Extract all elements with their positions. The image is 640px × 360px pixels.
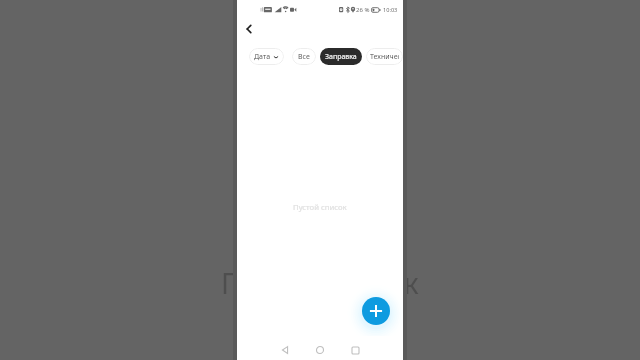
staticText: Дата bbox=[254, 52, 271, 62]
button[interactable]: Recents bbox=[344, 339, 366, 360]
button[interactable]: Заправка bbox=[320, 48, 362, 65]
button[interactable]: Back bbox=[274, 339, 296, 360]
staticText: Пустой список bbox=[221, 264, 419, 303]
button[interactable]: Add entry bbox=[362, 297, 390, 325]
button[interactable]: Back bbox=[239, 19, 259, 39]
staticText: 10:03 bbox=[383, 6, 398, 14]
button[interactable]: Все bbox=[292, 48, 316, 65]
staticText: Техническое обслуживание bbox=[370, 52, 399, 62]
staticText: Все bbox=[298, 52, 310, 62]
staticText: Пустой список bbox=[293, 202, 347, 212]
button[interactable]: Дата bbox=[249, 48, 284, 65]
staticText: Заправка bbox=[325, 52, 357, 62]
button[interactable]: Home bbox=[309, 339, 331, 360]
button[interactable]: Техническое обслуживание bbox=[366, 48, 403, 65]
staticText: 26 % bbox=[356, 6, 370, 14]
